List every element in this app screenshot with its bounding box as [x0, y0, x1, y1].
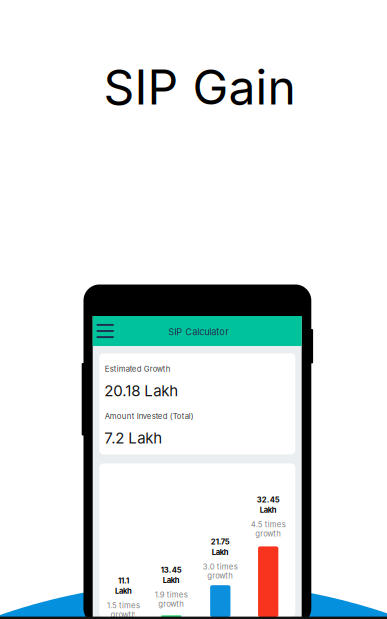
staticText: 20.18 Lakh: [104, 382, 178, 400]
staticText: growth: [158, 599, 184, 609]
staticText: SIP Calculator: [168, 326, 228, 337]
button[interactable]: Menu: [92, 316, 118, 346]
staticText: 11.1: [118, 576, 129, 585]
staticText: SIP Gain: [103, 58, 295, 116]
staticText: Estimated Growth: [105, 364, 171, 374]
staticText: Amount Invested (Total): [105, 411, 194, 421]
staticText: Lakh: [115, 586, 132, 596]
staticText: 1.9 times: [155, 590, 188, 599]
staticText: Lakh: [260, 505, 277, 515]
staticText: 4.5 times: [251, 520, 286, 529]
staticText: Lakh: [212, 547, 229, 557]
staticText: 1.5 times: [107, 601, 140, 610]
staticText: 3.0 times: [203, 562, 238, 571]
staticText: 32.45: [257, 495, 280, 504]
staticText: growth: [110, 610, 136, 619]
staticText: Lakh: [163, 576, 180, 585]
staticText: 13.45: [161, 565, 182, 575]
staticText: 7.2 Lakh: [104, 429, 162, 447]
staticText: 21.75: [211, 537, 230, 546]
staticText: growth: [207, 571, 233, 580]
staticText: growth: [255, 529, 281, 538]
